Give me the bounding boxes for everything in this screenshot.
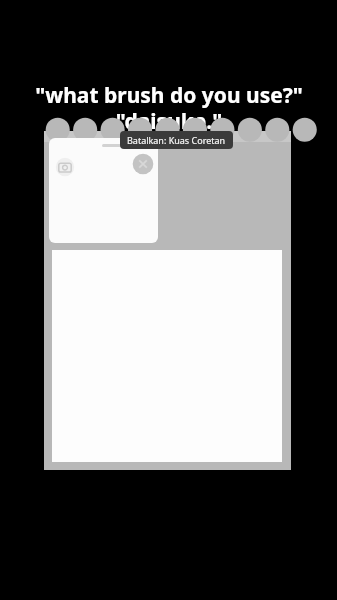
staticText: Batalkan: Kuas Coretan bbox=[127, 134, 226, 146]
button[interactable]: Close bbox=[132, 153, 154, 175]
button[interactable]: Batalkan: Kuas Coretan bbox=[120, 131, 233, 149]
button[interactable]: Camera bbox=[49, 138, 158, 243]
button[interactable]: Camera bbox=[55, 157, 75, 177]
staticText: "what brush do you use?" "daisuke." bbox=[35, 81, 303, 136]
